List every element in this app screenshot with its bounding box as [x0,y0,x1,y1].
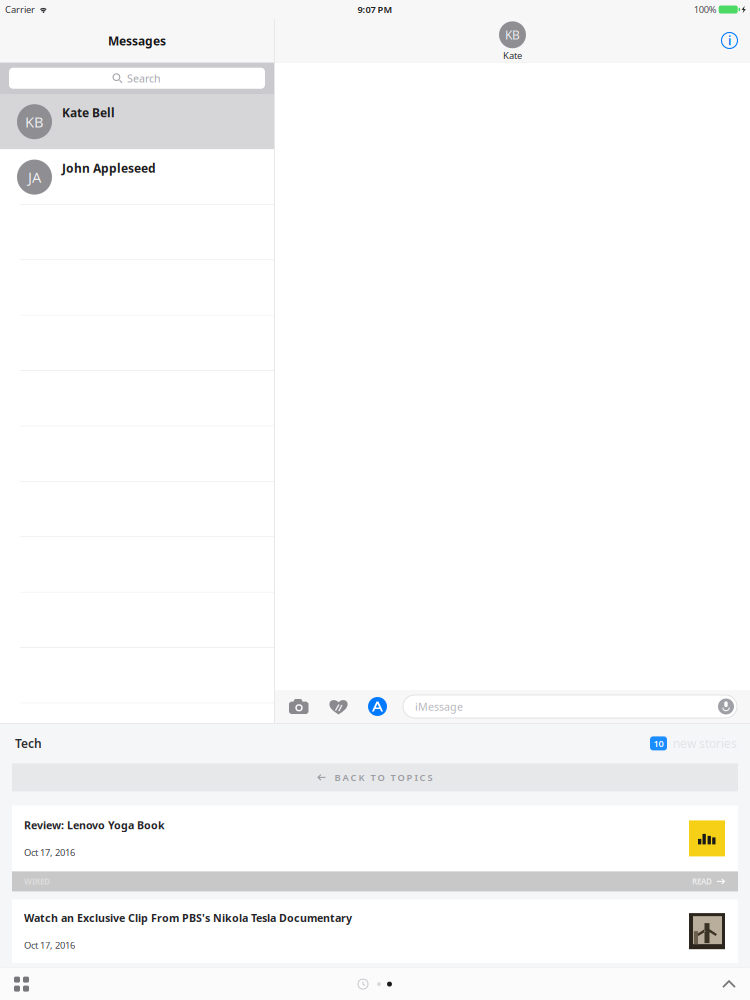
staticText: iMessage [415,699,463,714]
staticText: Watch an Exclusive Clip From PBS's Nikol… [24,911,352,925]
staticText: Kate [503,49,522,62]
staticText: Messages [108,33,166,49]
staticText: READ [692,876,712,887]
button[interactable]: B A C K T O T O P I C S [12,763,738,791]
button[interactable]: Search [9,68,265,89]
staticText: new stories [673,735,737,751]
staticText: KB [25,112,44,131]
button[interactable]: KB [0,94,274,149]
button[interactable]: App drawer [0,977,29,992]
staticText: i [728,32,731,48]
staticText: Kate Bell [62,105,115,121]
staticText: JA [28,167,41,187]
staticText: 10 [653,737,663,750]
staticText: Review: Lenovo Yoga Book [24,818,165,832]
staticText: Search [127,71,161,85]
staticText: Oct 17, 2016 [24,846,75,859]
button[interactable]: Watch an Exclusive Clip From PBS's Nikol… [12,899,738,963]
staticText: WIRED [24,876,50,887]
staticText: KB [505,27,520,43]
staticText: Carrier [5,3,35,16]
button[interactable]: Expand [722,980,750,989]
staticText: Tech [15,735,42,751]
staticText: Oct 17, 2016 [24,939,75,951]
staticText: John Appleseed [62,160,156,176]
button[interactable]: Digital Touch [309,698,348,714]
button[interactable]: iMessage [403,695,737,718]
staticText: 100% [694,3,717,16]
button[interactable]: iMessage Apps [348,697,387,716]
button[interactable]: JA [0,149,274,205]
staticText: 9:07 PM [357,3,392,16]
staticText: B A C K T O T O P I C S [334,771,432,784]
button[interactable]: Camera [275,699,309,714]
button[interactable]: Details [721,32,750,49]
button[interactable]: Review: Lenovo Yoga Book [12,805,738,891]
